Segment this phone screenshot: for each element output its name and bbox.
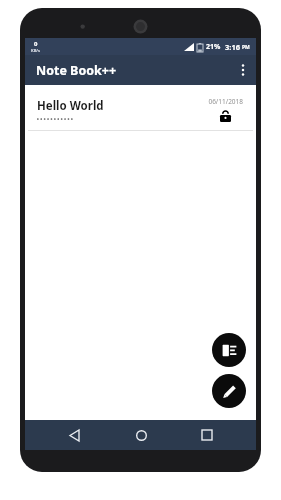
staticText: Hello World bbox=[37, 98, 104, 114]
staticText: 3:16 bbox=[225, 42, 240, 52]
other: Locked note bbox=[220, 110, 231, 122]
button[interactable]: Recent apps bbox=[189, 420, 225, 450]
button[interactable]: More options bbox=[230, 57, 256, 83]
staticText: 0 bbox=[34, 40, 38, 48]
button[interactable]: New note bbox=[212, 374, 246, 408]
staticText: PM bbox=[242, 44, 250, 51]
staticText: KB/s bbox=[31, 48, 40, 53]
button[interactable]: Home bbox=[123, 420, 159, 450]
staticText: 06/11/2018 bbox=[208, 97, 243, 106]
staticText: Note Book++ bbox=[36, 62, 117, 79]
button[interactable]: Hello World bbox=[28, 87, 253, 131]
staticText: 21% bbox=[206, 42, 221, 52]
button[interactable]: Notes list bbox=[212, 333, 246, 367]
button[interactable]: Back bbox=[56, 420, 92, 450]
